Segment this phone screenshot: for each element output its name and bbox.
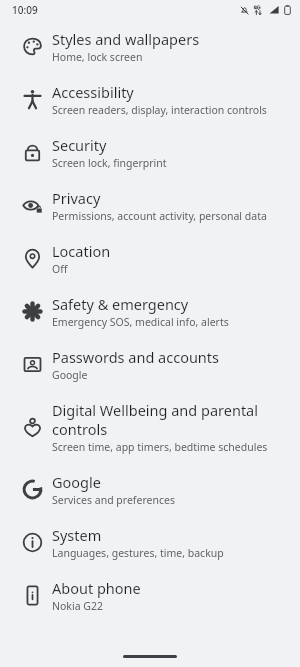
button[interactable]: Safety & emergency <box>0 285 300 338</box>
staticText: Languages, gestures, time, backup <box>52 546 224 560</box>
staticText: Digital Wellbeing and parental controls <box>52 400 286 439</box>
staticText: Safety & emergency <box>52 294 189 314</box>
staticText: Screen readers, display, interaction con… <box>52 103 267 117</box>
staticText: System <box>52 525 102 545</box>
button[interactable]: Google <box>0 463 300 516</box>
button[interactable]: System <box>0 516 300 569</box>
staticText: Home, lock screen <box>52 50 143 64</box>
staticText: Styles and wallpapers <box>52 29 200 49</box>
staticText: Screen lock, fingerprint <box>52 156 167 170</box>
button[interactable]: Security <box>0 126 300 179</box>
button[interactable]: Passwords and accounts <box>0 338 300 391</box>
staticText: Security <box>52 135 107 155</box>
staticText: Services and preferences <box>52 493 175 507</box>
staticText: Passwords and accounts <box>52 347 220 367</box>
staticText: Accessibility <box>52 82 134 102</box>
staticText: 10:09 <box>12 3 38 17</box>
staticText: Privacy <box>52 188 101 208</box>
button[interactable]: About phone <box>0 569 300 622</box>
staticText: Permissions, account activity, personal … <box>52 209 267 223</box>
staticText: Google <box>52 368 88 382</box>
staticText: About phone <box>52 578 141 598</box>
button[interactable]: Accessibility <box>0 73 300 126</box>
staticText: Nokia G22 <box>52 599 103 613</box>
staticText: Screen time, app timers, bedtime schedul… <box>52 440 268 454</box>
button[interactable]: Location <box>0 232 300 285</box>
staticText: Location <box>52 241 111 261</box>
staticText: Google <box>52 472 101 492</box>
staticText: Emergency SOS, medical info, alerts <box>52 315 229 329</box>
button[interactable]: Styles and wallpapers <box>0 20 300 73</box>
button[interactable]: Privacy <box>0 179 300 232</box>
button[interactable]: Digital Wellbeing and parental controls <box>0 391 300 463</box>
staticText: Off <box>52 262 68 276</box>
